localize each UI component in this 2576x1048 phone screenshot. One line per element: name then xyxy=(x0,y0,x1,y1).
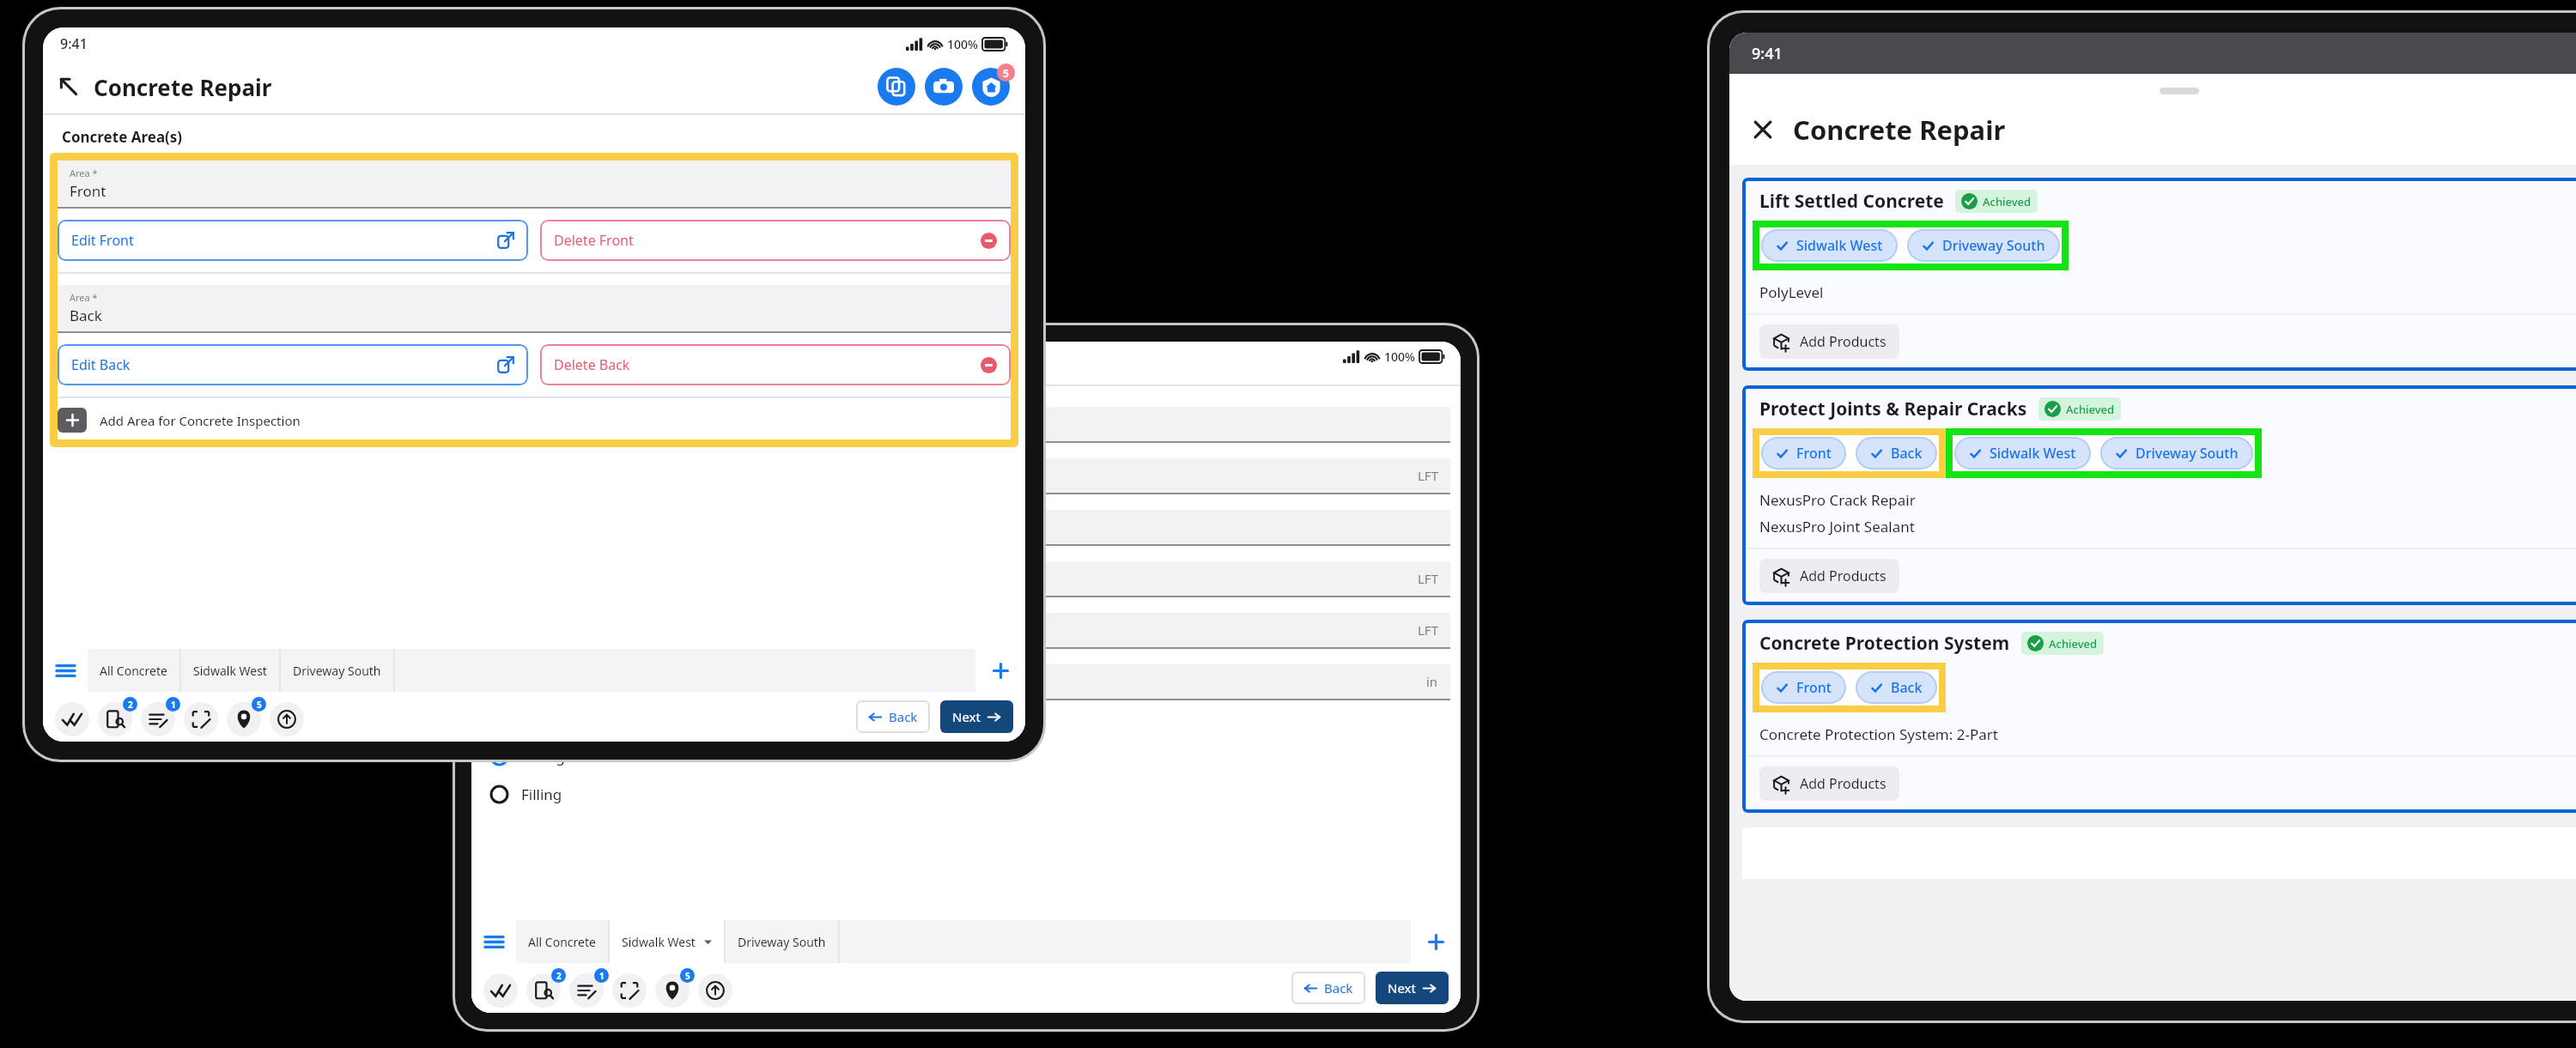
button[interactable]: Delete Back xyxy=(540,344,1011,385)
staticText: 2 xyxy=(556,970,562,982)
staticText: Driveway South xyxy=(293,663,381,679)
staticText: Delete Back xyxy=(554,355,630,374)
button[interactable]: Sidwalk West xyxy=(610,920,724,963)
staticText: 9:41 xyxy=(60,34,88,53)
staticText: 2 xyxy=(128,699,133,711)
button[interactable]: Add tab xyxy=(1411,920,1461,963)
staticText: Add Area for Concrete Inspection xyxy=(100,412,301,429)
staticText: Concrete Protection System xyxy=(1759,631,2010,656)
staticText: Concrete Protection System: 2-Part xyxy=(1759,724,1998,744)
staticText: Driveway South xyxy=(2136,444,2239,463)
button[interactable]: Front xyxy=(1761,437,1846,469)
staticText: Delete Front xyxy=(554,231,634,250)
button[interactable]: Edit Back xyxy=(58,344,528,385)
staticText: LFT xyxy=(1418,570,1438,587)
button[interactable]: Add Area for Concrete Inspection xyxy=(58,408,1011,439)
staticText: 100% xyxy=(1384,348,1415,365)
button[interactable]: Front xyxy=(1761,671,1846,704)
button[interactable]: Collapse xyxy=(58,76,79,97)
button[interactable]: Delete Front xyxy=(540,220,1011,261)
button[interactable]: Next xyxy=(940,700,1013,733)
button[interactable]: Approvals xyxy=(483,973,518,1008)
button[interactable]: Add tab xyxy=(975,649,1025,692)
staticText: Filling xyxy=(521,784,562,804)
button[interactable]: All Concrete xyxy=(516,920,608,963)
button[interactable]: Sidwalk West xyxy=(1954,437,2091,469)
button[interactable]: Add Products xyxy=(1759,559,1899,593)
button[interactable]: Next xyxy=(1376,972,1449,1004)
staticText: Sidwalk West xyxy=(193,663,267,679)
button[interactable]: Driveway South xyxy=(726,920,838,963)
staticText: 5 xyxy=(685,970,690,982)
staticText: NexusPro Joint Sealant xyxy=(1759,517,1915,536)
button[interactable]: Measure xyxy=(612,973,647,1008)
staticText: All Concrete xyxy=(100,663,167,679)
button[interactable]: Upload xyxy=(270,702,304,736)
button[interactable]: All Concrete xyxy=(88,649,179,692)
button[interactable]: Photos xyxy=(526,973,561,1008)
button[interactable]: Close xyxy=(1752,118,1774,141)
staticText: Driveway South xyxy=(1942,236,2045,255)
staticText: PolyLevel xyxy=(1759,282,1824,302)
button[interactable]: Back xyxy=(1856,671,1937,704)
button[interactable]: Location xyxy=(655,973,690,1008)
button[interactable]: Filling xyxy=(471,782,1461,807)
staticText: 1 xyxy=(599,970,605,982)
button[interactable]: Lifting xyxy=(471,744,1461,769)
staticText: Protect Joints & Repair Cracks xyxy=(1759,397,2027,421)
staticText: Edit Back xyxy=(71,355,131,374)
staticText: Next xyxy=(1388,979,1416,997)
staticText: Front xyxy=(70,181,106,201)
button[interactable]: Back xyxy=(1856,437,1937,469)
staticText: Concrete Repair xyxy=(1793,112,2006,148)
button[interactable]: Notes xyxy=(569,973,604,1008)
staticText: LFT xyxy=(1418,621,1438,639)
staticText: LFT xyxy=(1418,467,1438,484)
button[interactable]: Menu xyxy=(471,920,516,963)
button[interactable]: Back xyxy=(856,700,930,733)
staticText: Sidwalk West xyxy=(1796,236,1883,255)
button[interactable]: Sidwalk West xyxy=(181,649,279,692)
staticText: NexusPro Crack Repair xyxy=(1759,490,1916,510)
staticText: Concrete Area(s) xyxy=(62,127,183,147)
button[interactable]: Approvals xyxy=(55,702,89,736)
button[interactable]: Driveway South xyxy=(281,649,393,692)
staticText: Driveway South xyxy=(738,934,826,950)
button[interactable]: Camera xyxy=(925,68,963,106)
staticText: Next xyxy=(952,708,981,725)
staticText: Front xyxy=(1796,444,1832,463)
staticText: Area * xyxy=(70,167,98,179)
staticText: Back xyxy=(1324,979,1353,997)
staticText: 9:41 xyxy=(1752,43,1783,64)
staticText: Add Products xyxy=(1800,332,1886,351)
staticText: Back xyxy=(1891,678,1923,697)
staticText: Edit Front xyxy=(71,231,134,250)
staticText: Achieved xyxy=(2049,636,2098,651)
button[interactable]: Sidwalk West xyxy=(1761,229,1898,262)
staticText: Achieved xyxy=(2066,402,2115,417)
button[interactable]: Edit Front xyxy=(58,220,528,261)
button[interactable]: Home alerts xyxy=(972,68,1010,106)
button[interactable]: Duplicate xyxy=(878,68,915,106)
button[interactable]: Location xyxy=(227,702,261,736)
button[interactable]: Add Products xyxy=(1759,766,1899,801)
staticText: 5 xyxy=(1003,66,1009,80)
staticText: in xyxy=(1426,673,1438,690)
button[interactable]: Driveway South xyxy=(2100,437,2253,469)
button[interactable]: Photos xyxy=(98,702,132,736)
staticText: Back xyxy=(889,708,918,725)
staticText: Concrete Repair xyxy=(94,72,272,102)
staticText: Area * xyxy=(70,291,98,304)
button[interactable]: Driveway South xyxy=(1907,229,2060,262)
staticText: Sidwalk West xyxy=(622,934,696,950)
button[interactable]: Upload xyxy=(698,973,732,1008)
button[interactable]: Menu xyxy=(43,649,88,692)
button[interactable]: Back xyxy=(1291,972,1365,1004)
button[interactable]: Measure xyxy=(184,702,218,736)
staticText: 1 xyxy=(171,699,176,711)
staticText: 100% xyxy=(947,36,978,52)
button[interactable]: Notes xyxy=(141,702,175,736)
button[interactable]: Add Products xyxy=(1759,324,1899,359)
